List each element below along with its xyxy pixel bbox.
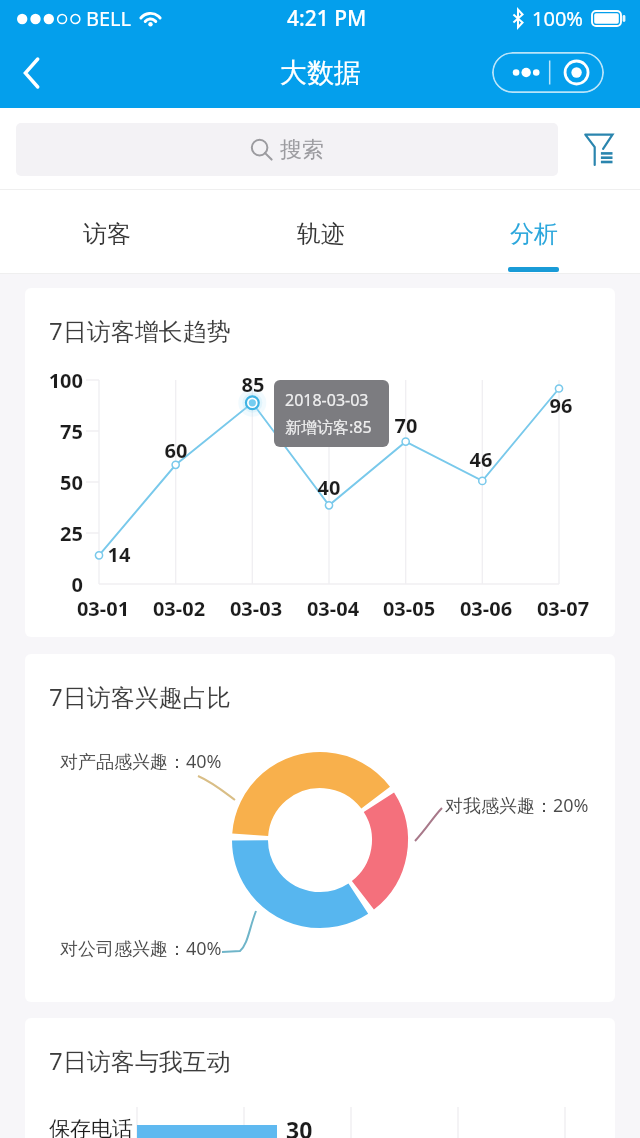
staticText: 轨迹 bbox=[297, 219, 345, 249]
staticText: 96 bbox=[516, 392, 606, 419]
staticText: 分析 bbox=[510, 219, 558, 249]
staticText: 70 bbox=[361, 412, 451, 439]
button[interactable]: More and close bbox=[492, 52, 604, 93]
staticText: 03-02 bbox=[134, 595, 224, 622]
staticText: 0 bbox=[25, 571, 83, 598]
staticText: 对公司感兴趣：40% bbox=[60, 936, 222, 961]
staticText: 03-07 bbox=[518, 595, 608, 622]
staticText: 7日访客增长趋势 bbox=[49, 314, 231, 347]
staticText: 新增访客:85 bbox=[285, 416, 372, 438]
staticText: 50 bbox=[25, 469, 83, 496]
staticText: 7日访客与我互动 bbox=[49, 1044, 231, 1077]
staticText: 25 bbox=[25, 520, 83, 547]
staticText: 对产品感兴趣：40% bbox=[60, 749, 222, 774]
staticText: 访客 bbox=[83, 219, 131, 249]
button[interactable]: Back bbox=[6, 47, 58, 99]
staticText: 7日访客兴趣占比 bbox=[49, 680, 231, 713]
staticText: 75 bbox=[25, 418, 83, 445]
staticText: 46 bbox=[436, 446, 526, 473]
staticText: 03-06 bbox=[441, 595, 531, 622]
staticText: 4:21 PM bbox=[287, 4, 367, 33]
button[interactable]: 访客 bbox=[0, 190, 214, 274]
button[interactable]: Filter bbox=[570, 118, 630, 184]
staticText: 03-04 bbox=[288, 595, 378, 622]
staticText: 14 bbox=[74, 541, 164, 568]
staticText: 大数据 bbox=[280, 56, 361, 90]
staticText: 100 bbox=[25, 367, 83, 394]
staticText: 30 bbox=[286, 1114, 313, 1138]
staticText: 保存电话 bbox=[49, 1116, 133, 1138]
staticText: 03-01 bbox=[58, 595, 148, 622]
staticText: BELL bbox=[86, 5, 132, 32]
button[interactable]: 搜索 bbox=[16, 123, 558, 176]
staticText: 03-05 bbox=[364, 595, 454, 622]
staticText: 85 bbox=[208, 371, 298, 398]
staticText: 对我感兴趣：20% bbox=[445, 793, 589, 818]
button[interactable]: 轨迹 bbox=[214, 190, 427, 274]
staticText: 100% bbox=[532, 5, 583, 32]
staticText: 60 bbox=[131, 437, 221, 464]
staticText: 03-03 bbox=[211, 595, 301, 622]
staticText: 2018-03-03 bbox=[285, 389, 369, 411]
button[interactable]: 分析 bbox=[427, 190, 640, 274]
staticText: 搜索 bbox=[280, 136, 324, 164]
staticText: 40 bbox=[284, 474, 374, 501]
